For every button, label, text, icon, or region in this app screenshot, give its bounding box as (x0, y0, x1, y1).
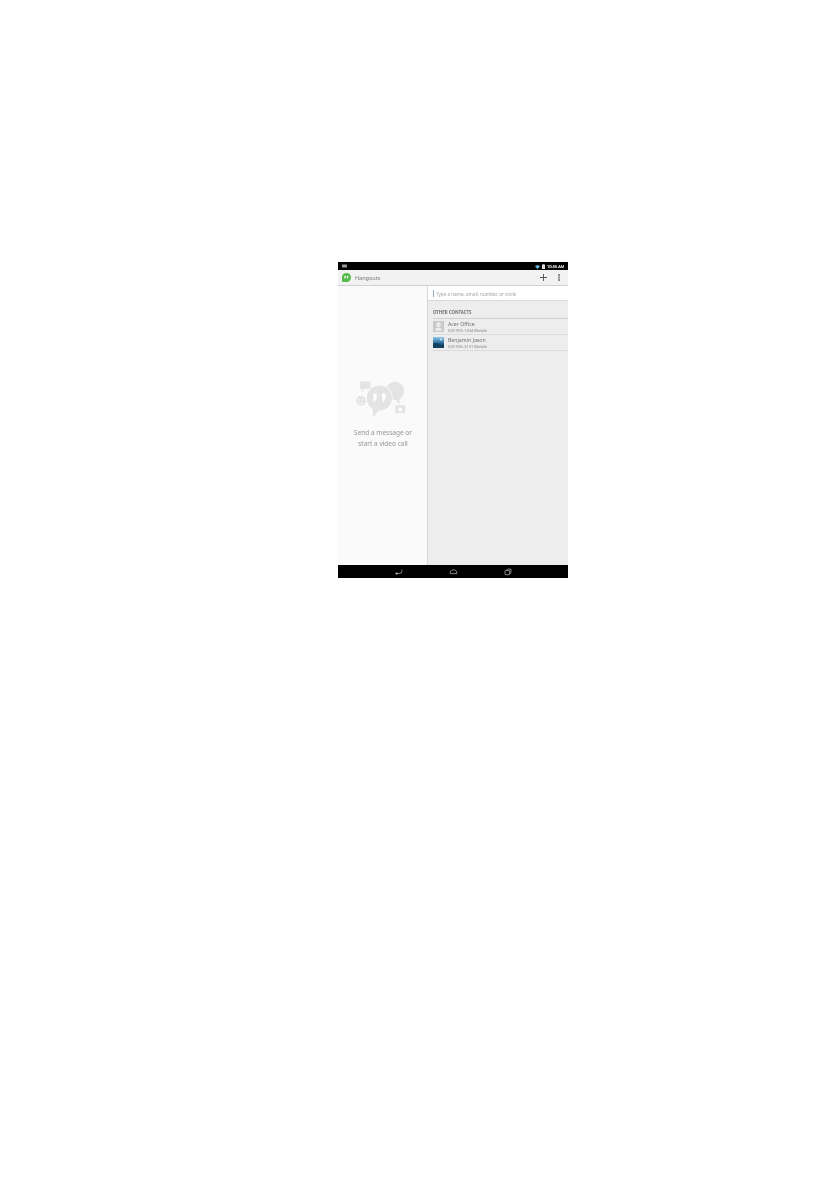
staticText: 10:56 AM (547, 264, 565, 269)
button[interactable]: New conversation (537, 271, 550, 284)
button[interactable]: Recent apps (500, 565, 516, 578)
button[interactable]: Home (445, 565, 461, 578)
staticText: Type a name, email, number, or circle (436, 291, 517, 297)
staticText: Acer Office (448, 320, 475, 327)
button[interactable]: Back (390, 565, 406, 578)
button[interactable]: More options (553, 272, 564, 283)
staticText: Benjamin Jason (448, 336, 486, 343)
button[interactable]: Benjamin Jason (428, 335, 568, 350)
staticText: Hangouts (355, 274, 381, 281)
button[interactable]: Hangouts (342, 273, 351, 282)
staticText: Send a message or (354, 428, 412, 437)
staticText: OTHER CONTACTS (433, 309, 472, 315)
staticText: start a video call (358, 439, 408, 448)
button[interactable]: Acer Office (428, 319, 568, 334)
button[interactable]: Type a name, email, number, or circle (428, 286, 568, 300)
staticText: (02) 936-3131 Mobile (448, 344, 488, 349)
staticText: (02) 993-1234 Mobile (448, 328, 488, 333)
